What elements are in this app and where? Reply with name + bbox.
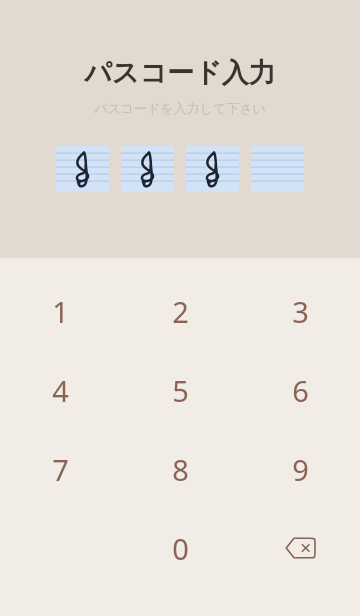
staticText: 4 <box>52 371 69 410</box>
staticText: パスコードを入力して下さい <box>94 100 266 116</box>
staticText: 7 <box>52 450 69 489</box>
staticText: 8 <box>172 450 189 489</box>
button[interactable]: 0 <box>143 523 217 573</box>
staticText: 0 <box>172 529 189 568</box>
staticText: 5 <box>172 371 189 410</box>
button[interactable]: 5 <box>143 365 217 415</box>
button[interactable]: 4 <box>23 365 97 415</box>
staticText: 2 <box>172 292 189 331</box>
staticText: パスコード入力 <box>84 56 276 90</box>
button[interactable]: 7 <box>23 444 97 494</box>
button[interactable]: 6 <box>263 365 337 415</box>
staticText: 9 <box>292 450 309 489</box>
button[interactable]: 8 <box>143 444 217 494</box>
button[interactable]: 3 <box>263 286 337 336</box>
staticText: 1 <box>52 292 69 331</box>
staticText: 3 <box>292 292 309 331</box>
button[interactable]: 1 <box>23 286 97 336</box>
staticText: 6 <box>292 371 309 410</box>
button[interactable]: Backspace <box>263 523 337 573</box>
button[interactable]: 9 <box>263 444 337 494</box>
button[interactable]: 2 <box>143 286 217 336</box>
